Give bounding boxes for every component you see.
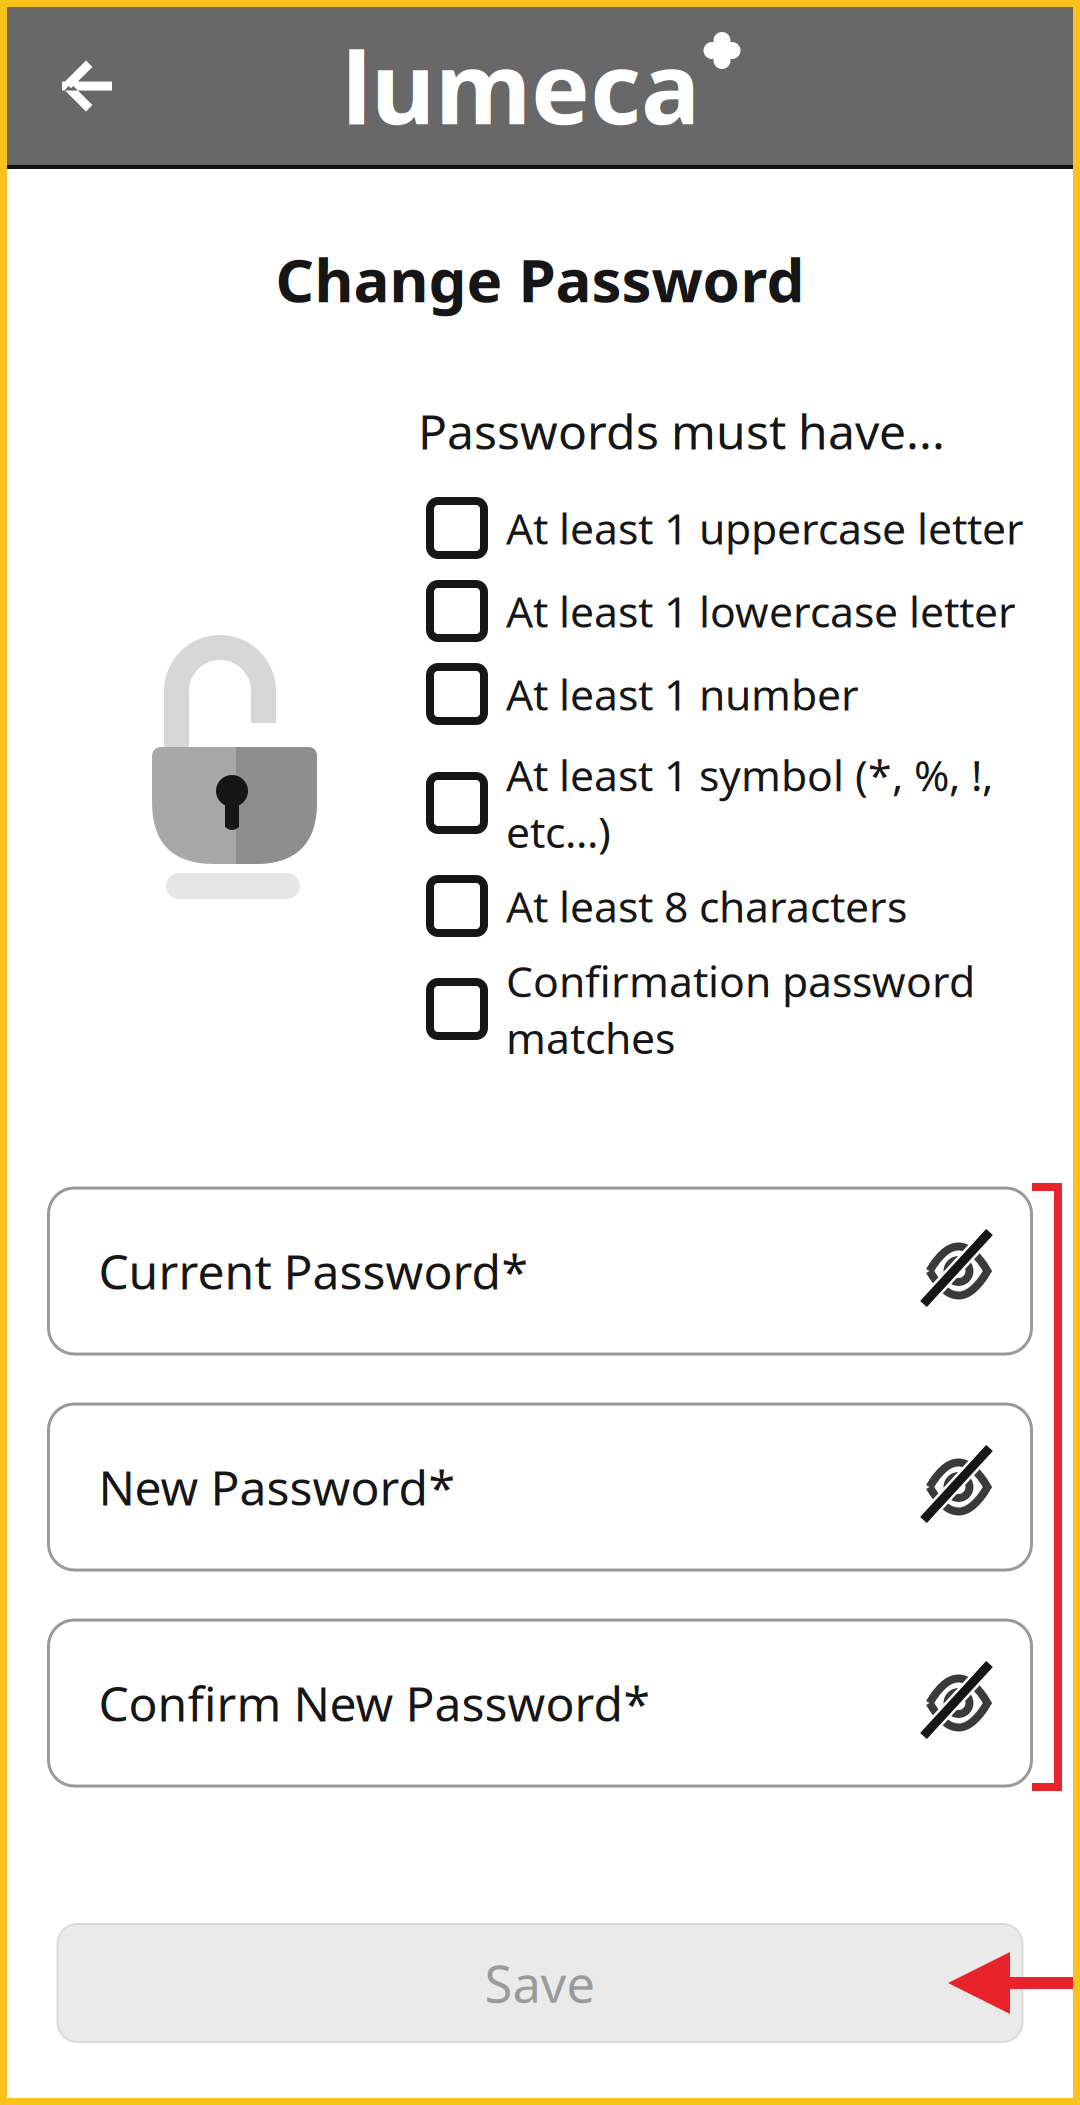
staticText: Current Password* [98,1239,527,1303]
staticText: At least 1 lowercase letter [506,583,1016,639]
button[interactable]: Back [7,6,167,166]
staticText: At least 1 symbol (*, %, !, etc...) [506,746,993,860]
button[interactable]: Current Password* [48,1188,1031,1354]
button[interactable]: New Password* [48,1404,1031,1570]
staticText: Confirm New Password* [98,1671,649,1735]
button[interactable]: Confirm New Password* [48,1620,1031,1786]
staticText: Change Password [275,239,804,319]
staticText: New Password* [98,1455,454,1519]
staticText: lumeca [342,20,700,151]
button[interactable]: Save [57,1924,1022,2042]
staticText: Confirmation password matches [506,952,975,1066]
staticText: At least 1 uppercase letter [506,500,1024,556]
staticText: At least 8 characters [506,878,907,934]
staticText: Save [484,1949,595,2017]
staticText: At least 1 number [506,666,859,722]
staticText: Passwords must have... [418,399,945,463]
